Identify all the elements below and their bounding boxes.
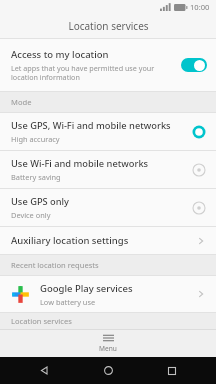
- button[interactable]: Access to my location: [0, 39, 216, 91]
- staticText: Mode: [11, 97, 32, 107]
- staticText: Device only: [11, 210, 51, 220]
- button[interactable]: Google Play services: [0, 276, 216, 312]
- staticText: Let apps that you have permitted use you…: [11, 63, 175, 82]
- staticText: Google Play services: [40, 282, 133, 295]
- button[interactable]: Auxiliary location settings: [0, 227, 216, 254]
- button[interactable]: Access to my location toggle: [181, 58, 207, 72]
- staticText: Battery saving: [11, 172, 61, 182]
- button[interactable]: Use GPS only: [0, 189, 216, 226]
- button[interactable]: Home: [88, 357, 128, 384]
- staticText: Access to my location: [11, 48, 109, 61]
- staticText: Use GPS only: [11, 195, 70, 208]
- staticText: Low battery use: [40, 297, 96, 307]
- other: Open: [196, 236, 206, 246]
- staticText: 10:00: [190, 2, 210, 12]
- button[interactable]: Menu: [0, 330, 216, 357]
- staticText: Use GPS, Wi-Fi and mobile networks: [11, 119, 171, 132]
- button[interactable]: Recent apps: [152, 357, 192, 384]
- staticText: Location services: [11, 316, 72, 326]
- other: Open: [196, 289, 206, 299]
- staticText: High accuracy: [11, 134, 60, 144]
- staticText: Use Wi-Fi and mobile networks: [11, 157, 149, 170]
- button[interactable]: Back: [24, 357, 64, 384]
- staticText: Menu: [99, 344, 117, 353]
- button[interactable]: Use Wi-Fi and mobile networks: [0, 151, 216, 188]
- staticText: Auxiliary location settings: [11, 234, 129, 247]
- staticText: Location services: [68, 19, 149, 33]
- button[interactable]: Use GPS, Wi-Fi and mobile networks: [0, 113, 216, 150]
- staticText: Recent location requests: [11, 260, 99, 270]
